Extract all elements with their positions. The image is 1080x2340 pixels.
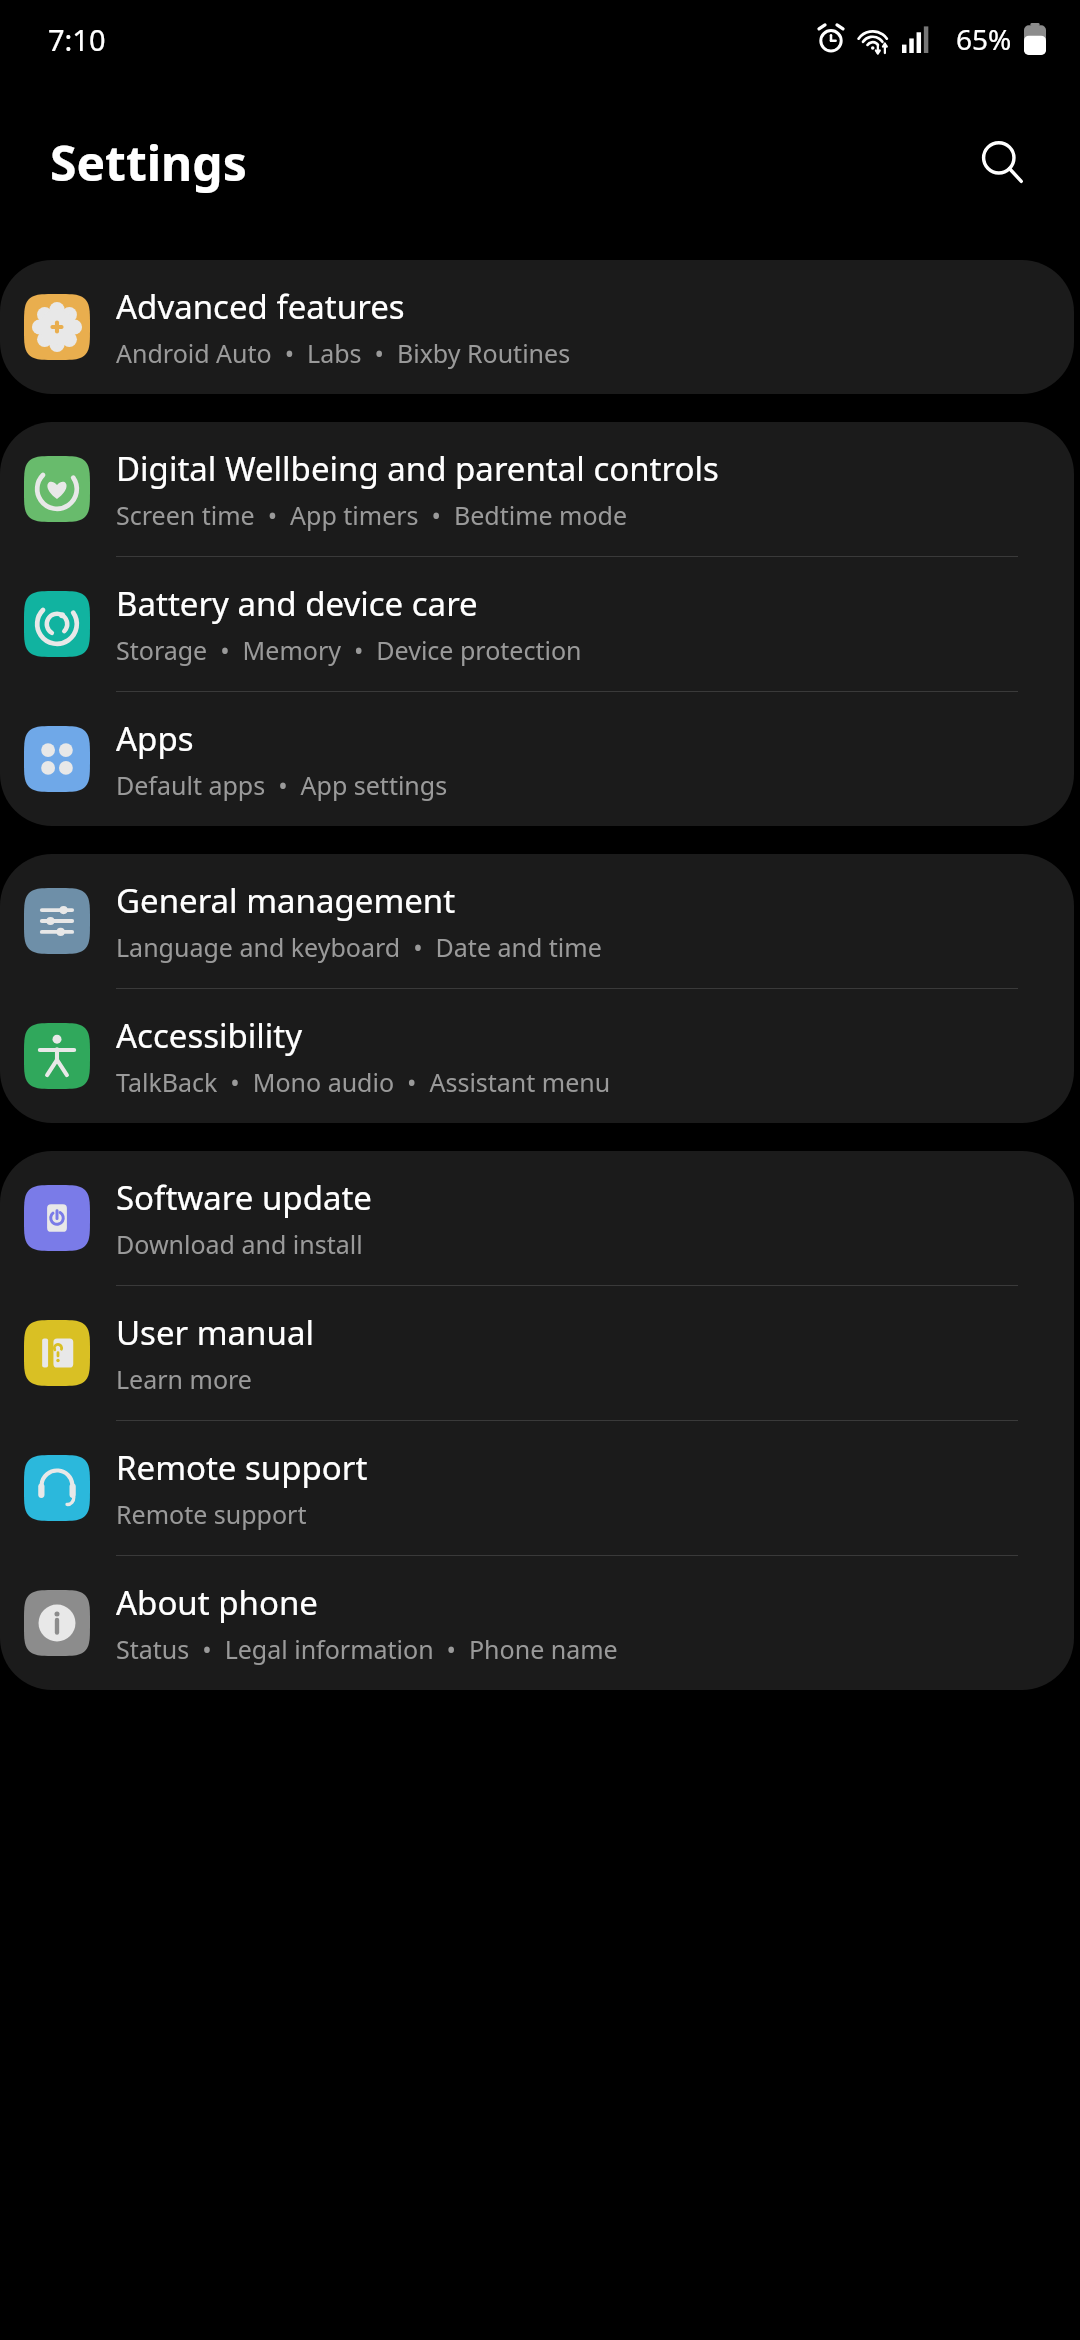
staticText: Accessibility (116, 1013, 303, 1058)
button[interactable]: Apps (0, 692, 1074, 826)
staticText: 7:10 (48, 20, 106, 59)
staticText: TalkBack • Mono audio • Assistant menu (116, 1065, 611, 1099)
staticText: Apps (116, 716, 194, 761)
staticText: Battery and device care (116, 581, 478, 626)
button[interactable]: Battery and device care (0, 557, 1074, 691)
staticText: Download and install (116, 1227, 363, 1261)
staticText: Screen time • App timers • Bedtime mode (116, 498, 628, 532)
button[interactable]: Accessibility (0, 989, 1074, 1123)
staticText: About phone (116, 1580, 318, 1625)
button[interactable]: Advanced features (0, 260, 1074, 394)
button[interactable]: Digital Wellbeing and parental controls (0, 422, 1074, 556)
button[interactable]: User manual (0, 1286, 1074, 1420)
staticText: Remote support (116, 1445, 368, 1490)
button[interactable]: Software update (0, 1151, 1074, 1285)
staticText: Advanced features (116, 284, 405, 329)
staticText: Remote support (116, 1497, 307, 1531)
staticText: Status • Legal information • Phone name (116, 1632, 618, 1666)
staticText: Software update (116, 1175, 372, 1220)
staticText: Default apps • App settings (116, 768, 448, 802)
staticText: Settings (50, 130, 247, 195)
button[interactable]: General management (0, 854, 1074, 988)
staticText: Learn more (116, 1362, 252, 1396)
button[interactable]: Search (960, 120, 1044, 204)
staticText: 65% (956, 20, 1012, 58)
button[interactable]: Remote support (0, 1421, 1074, 1555)
staticText: Digital Wellbeing and parental controls (116, 446, 719, 491)
staticText: General management (116, 878, 456, 923)
staticText: Android Auto • Labs • Bixby Routines (116, 336, 571, 370)
staticText: Storage • Memory • Device protection (116, 633, 582, 667)
staticText: User manual (116, 1310, 314, 1355)
button[interactable]: About phone (0, 1556, 1074, 1690)
staticText: Language and keyboard • Date and time (116, 930, 602, 964)
